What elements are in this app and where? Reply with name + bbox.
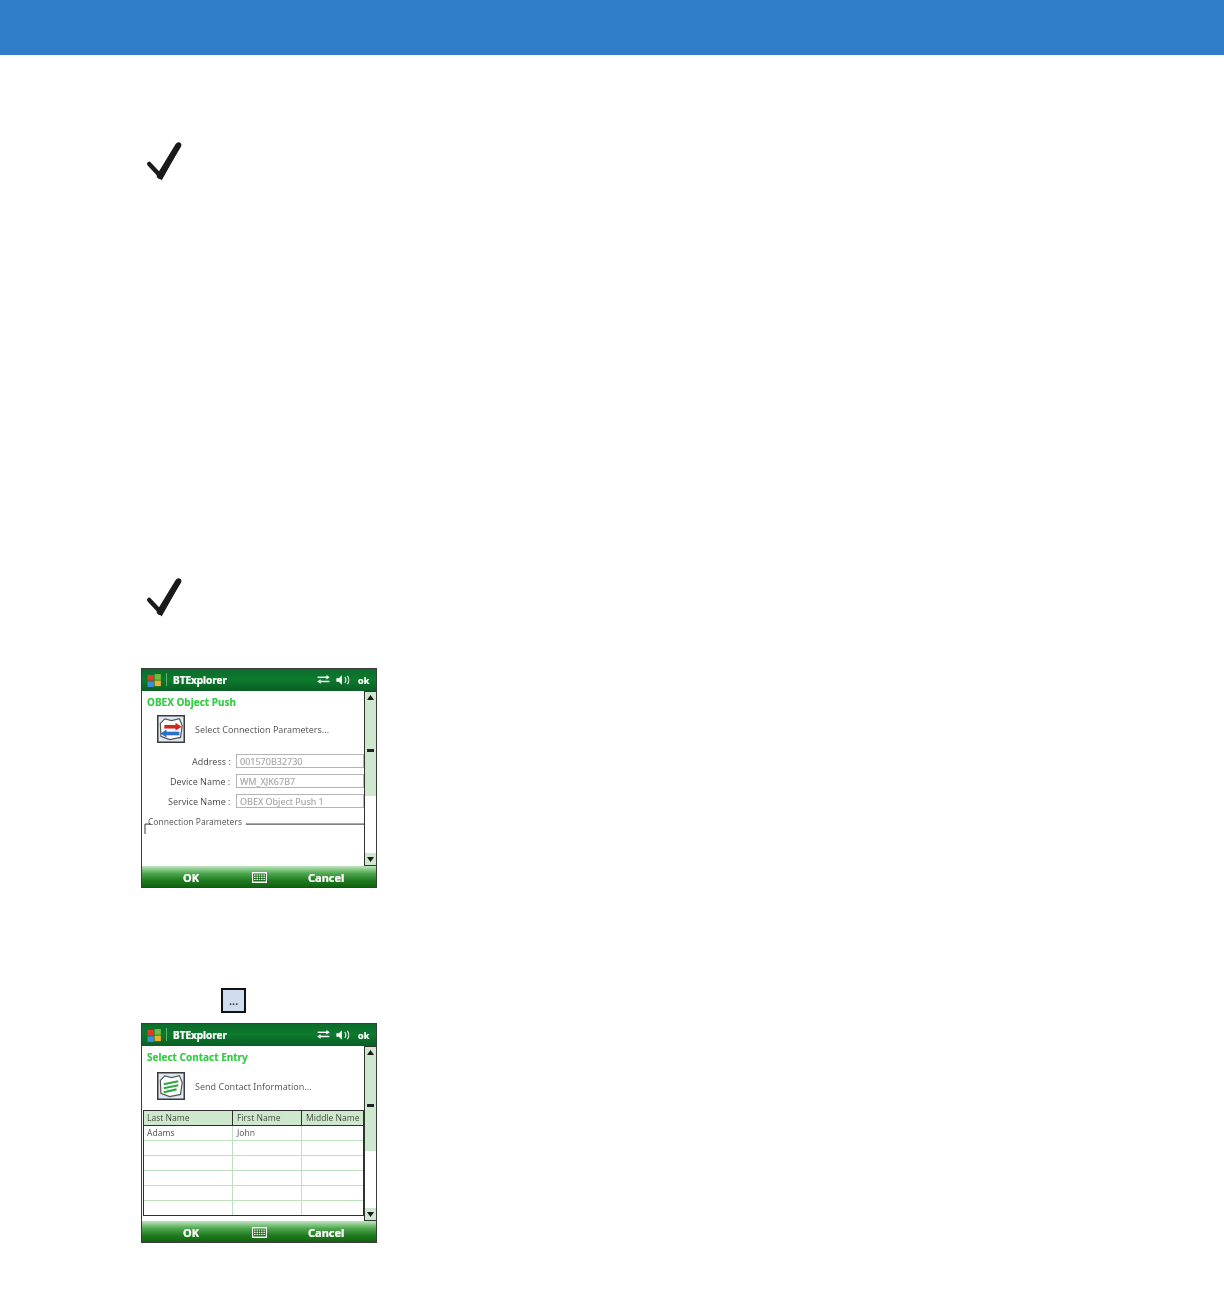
button[interactable]: Last Name xyxy=(143,1110,233,1125)
staticText: Select Connection Parameters... xyxy=(195,723,330,735)
staticText: ok xyxy=(358,674,370,686)
staticText: Service Name : xyxy=(168,795,231,807)
staticText: WM_XJK67B7 xyxy=(240,775,296,787)
staticText: John xyxy=(237,1127,255,1139)
staticText: ok xyxy=(358,1029,370,1041)
button[interactable]: Keyboard xyxy=(242,1221,276,1243)
staticText: OK xyxy=(183,1225,200,1240)
button[interactable]: Middle Name xyxy=(302,1110,364,1125)
button[interactable]: Scroll xyxy=(364,1046,377,1221)
button[interactable] xyxy=(143,1156,364,1170)
button[interactable]: Adams xyxy=(143,1126,364,1140)
staticText: Cancel xyxy=(308,870,345,885)
button[interactable]: Cancel xyxy=(276,866,377,888)
staticText: OK xyxy=(183,870,200,885)
button[interactable]: WM_XJK67B7 xyxy=(236,774,364,788)
button[interactable]: 001570B32730 xyxy=(236,754,364,768)
staticText: Send Contact Information... xyxy=(195,1080,312,1092)
staticText: BTExplorer xyxy=(173,673,228,687)
button[interactable]: First Name xyxy=(233,1110,302,1125)
button[interactable]: OK close xyxy=(356,1029,372,1041)
staticText: BTExplorer xyxy=(173,1028,228,1042)
staticText: Device Name : xyxy=(170,775,231,787)
button[interactable]: Scroll xyxy=(364,691,377,866)
button[interactable] xyxy=(143,1171,364,1185)
staticText: Last Name xyxy=(147,1112,190,1124)
button[interactable]: Keyboard xyxy=(242,866,276,888)
button[interactable]: More options xyxy=(221,988,246,1013)
staticText: ... xyxy=(229,993,239,1008)
button[interactable] xyxy=(143,1141,364,1155)
staticText: OBEX Object Push 1 xyxy=(240,795,324,807)
staticText: 001570B32730 xyxy=(240,755,303,767)
button[interactable] xyxy=(143,1186,364,1200)
staticText: OBEX Object Push xyxy=(147,695,236,709)
staticText: Middle Name xyxy=(306,1112,360,1124)
button[interactable] xyxy=(143,1201,364,1215)
staticText: Select Contact Entry xyxy=(147,1050,248,1064)
button[interactable]: Cancel xyxy=(276,1221,377,1243)
button[interactable]: OK xyxy=(141,866,242,888)
staticText: First Name xyxy=(237,1112,281,1124)
button[interactable]: OBEX Object Push 1 xyxy=(236,794,364,808)
staticText: Adams xyxy=(147,1127,175,1139)
staticText: Cancel xyxy=(308,1225,345,1240)
staticText: Connection Parameters xyxy=(148,816,242,828)
button[interactable]: OK close xyxy=(356,674,372,686)
button[interactable]: OK xyxy=(141,1221,242,1243)
staticText: Address : xyxy=(192,755,231,767)
